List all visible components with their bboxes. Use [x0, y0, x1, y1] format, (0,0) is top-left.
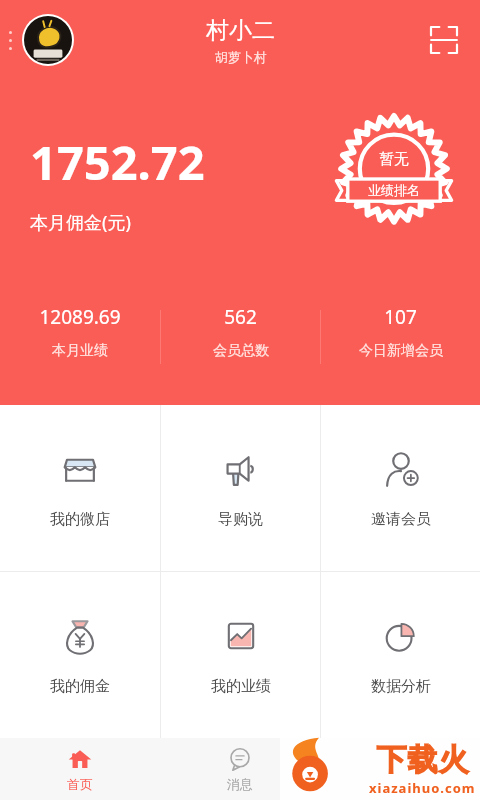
staticText: 今日新增会员	[359, 342, 443, 360]
button[interactable]: 562	[161, 302, 320, 372]
staticText: 村小二	[206, 16, 275, 45]
staticText: 邀请会员	[371, 510, 431, 529]
staticText: xiazaihuo.com	[369, 779, 476, 797]
staticText: 本月业绩	[52, 342, 108, 360]
staticText: 暂无	[379, 150, 409, 169]
button[interactable]: 我的佣金	[0, 572, 160, 738]
button[interactable]: 首页	[0, 738, 160, 800]
button[interactable]: 12089.69	[0, 302, 160, 372]
staticText: 1752.72	[30, 130, 205, 194]
button[interactable]: 我的微店	[0, 405, 160, 571]
button[interactable]: 107	[321, 302, 480, 372]
button[interactable]: 消息	[160, 738, 320, 800]
staticText: 消息	[227, 776, 253, 792]
button[interactable]: 导购说	[161, 405, 320, 571]
staticText: 107	[384, 304, 417, 330]
button[interactable]: Performance ranking: none yet	[334, 116, 454, 236]
staticText: 数据分析	[371, 677, 431, 696]
staticText: 我的	[387, 776, 413, 792]
staticText: 下载火	[376, 741, 469, 779]
staticText: 本月佣金(元)	[30, 210, 131, 235]
staticText: 562	[224, 304, 257, 330]
button[interactable]: 我的业绩	[161, 572, 320, 738]
button[interactable]: 我的	[320, 738, 480, 800]
button[interactable]: 邀请会员	[321, 405, 480, 571]
staticText: 会员总数	[213, 342, 269, 360]
staticText: 我的微店	[50, 510, 110, 529]
button[interactable]: 数据分析	[321, 572, 480, 738]
staticText: 我的业绩	[211, 677, 271, 696]
staticText: 业绩排名	[368, 182, 420, 198]
staticText: 12089.69	[39, 304, 121, 330]
staticText: 导购说	[218, 510, 263, 529]
button[interactable]: Scan QR code	[424, 20, 464, 60]
button[interactable]: Profile avatar	[24, 16, 72, 64]
staticText: 我的佣金	[50, 677, 110, 696]
staticText: 胡萝卜村	[215, 49, 267, 65]
staticText: 首页	[67, 776, 93, 792]
